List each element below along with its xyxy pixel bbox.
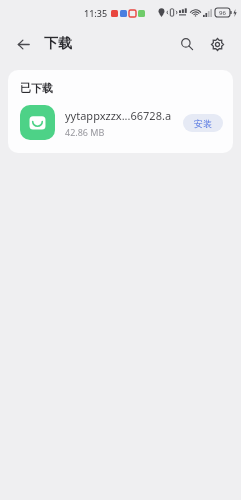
button[interactable]: Search — [173, 30, 201, 58]
button[interactable]: yytappxzzx...66728.apk — [8, 95, 233, 153]
staticText: 96 — [219, 9, 226, 17]
staticText: 已下载 — [20, 81, 53, 95]
staticText: yytappxzzx...66728.apk — [65, 108, 177, 123]
staticText: 安装 — [194, 118, 212, 129]
staticText: 下载 — [44, 35, 72, 53]
button[interactable]: Back — [11, 32, 36, 57]
button[interactable]: 安装 — [183, 114, 223, 132]
staticText: 11:35 — [84, 7, 108, 19]
staticText: 42.86 MB — [65, 126, 105, 138]
button[interactable]: Settings — [203, 30, 231, 58]
